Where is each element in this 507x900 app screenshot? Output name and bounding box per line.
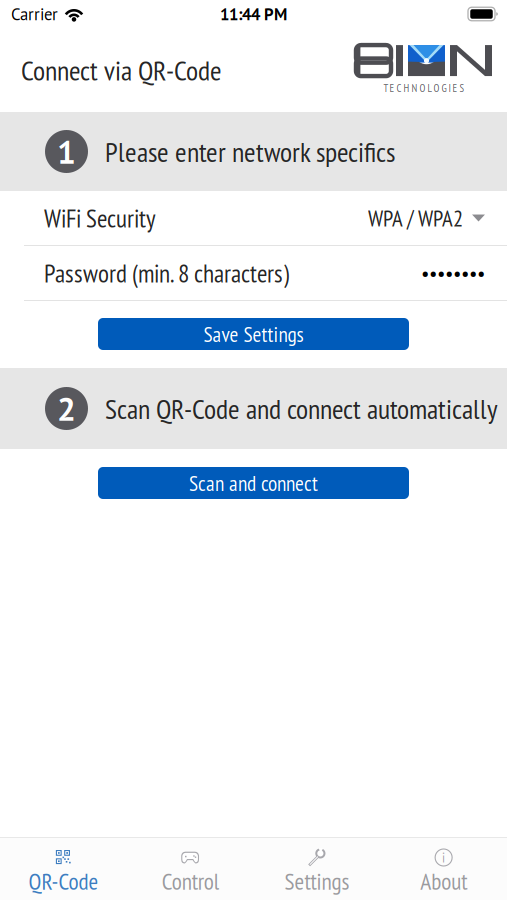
staticText: i — [442, 849, 446, 866]
staticText: WiFi Security — [44, 202, 156, 234]
staticText: T E C H N O L O G I E S — [383, 81, 464, 95]
staticText: •••••••• — [421, 261, 485, 285]
button[interactable]: Save Settings — [98, 318, 409, 350]
staticText: 1 — [57, 130, 76, 173]
button[interactable]: Scan and connect — [98, 467, 409, 499]
staticText: Control — [162, 866, 219, 896]
staticText: QR-Code — [28, 866, 98, 896]
staticText: Please enter network specifics — [105, 133, 395, 170]
staticText: 11:44 PM — [220, 3, 287, 25]
staticText: Settings — [284, 866, 349, 896]
staticText: Save Settings — [203, 320, 303, 348]
staticText: Password (min. 8 characters) — [44, 257, 289, 289]
staticText: Scan QR-Code and connect automatically — [105, 390, 498, 427]
staticText: About — [420, 866, 467, 896]
button[interactable]: Control — [127, 838, 254, 900]
button[interactable]: QR-Code — [0, 838, 127, 900]
staticText: 2 — [57, 387, 76, 430]
staticText: Carrier — [11, 3, 58, 25]
button[interactable]: Settings — [253, 838, 380, 900]
button[interactable]: i — [380, 838, 507, 900]
staticText: Connect via QR-Code — [21, 52, 222, 88]
staticText: Scan and connect — [189, 469, 318, 497]
staticText: WPA / WPA2 — [368, 203, 463, 233]
